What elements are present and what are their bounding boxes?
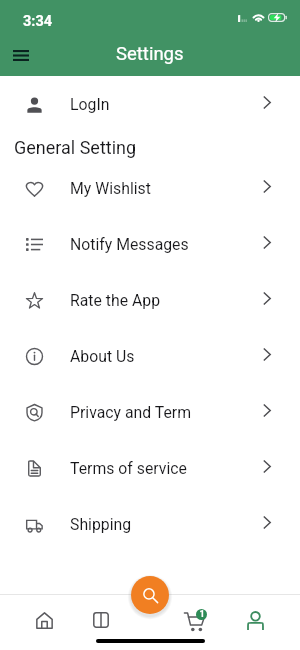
button[interactable]: Menu: [6, 41, 36, 71]
staticText: 1: [199, 609, 205, 620]
staticText: My Wishlist: [70, 179, 151, 198]
button[interactable]: Categories: [83, 609, 119, 631]
staticText: LogIn: [70, 95, 110, 114]
staticText: Terms of service: [70, 459, 187, 478]
button[interactable]: Privacy and Term: [0, 384, 300, 440]
button[interactable]: Cart: [177, 609, 213, 631]
button[interactable]: About Us: [0, 328, 300, 384]
staticText: Privacy and Term: [70, 403, 192, 422]
staticText: Notify Messages: [70, 235, 189, 254]
staticText: About Us: [70, 347, 135, 366]
button[interactable]: Rate the App: [0, 272, 300, 328]
staticText: General Setting: [14, 137, 137, 158]
button[interactable]: Home: [26, 609, 62, 631]
button[interactable]: Profile: [237, 609, 273, 631]
button[interactable]: Shipping: [0, 496, 300, 552]
staticText: Shipping: [70, 515, 132, 534]
staticText: 3:34: [23, 13, 53, 30]
button[interactable]: LogIn: [0, 76, 300, 132]
button[interactable]: My Wishlist: [0, 160, 300, 216]
button[interactable]: Notify Messages: [0, 216, 300, 272]
staticText: Rate the App: [70, 291, 160, 310]
button[interactable]: Terms of service: [0, 440, 300, 496]
staticText: Settings: [116, 43, 184, 65]
button[interactable]: Search: [131, 576, 169, 614]
